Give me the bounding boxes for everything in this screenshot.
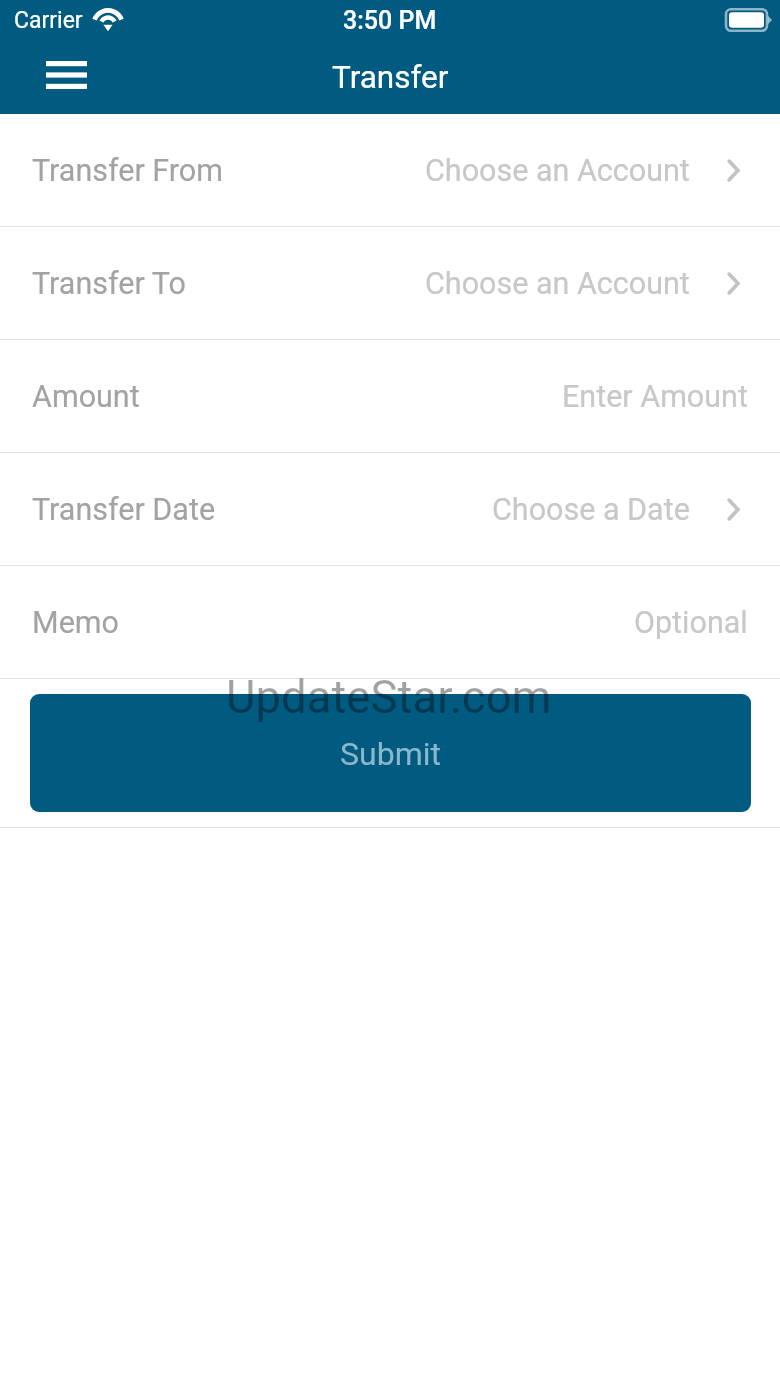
staticText: Submit <box>340 735 441 773</box>
staticText: Transfer To <box>32 266 186 302</box>
staticText: UpdateStar.com <box>226 671 552 724</box>
button[interactable]: Submit <box>30 694 751 812</box>
staticText: Transfer Date <box>32 492 216 528</box>
staticText: Enter Amount <box>562 379 748 415</box>
button[interactable]: Transfer From <box>0 114 780 227</box>
staticText: 3:50 PM <box>343 6 437 35</box>
staticText: Carrier <box>14 7 83 34</box>
button[interactable]: Memo <box>0 566 780 679</box>
staticText: Choose a Date <box>492 492 690 528</box>
staticText: Optional <box>634 605 748 641</box>
staticText: Amount <box>32 379 140 415</box>
button[interactable]: Amount <box>0 340 780 453</box>
staticText: Choose an Account <box>425 153 690 189</box>
button[interactable]: Transfer To <box>0 227 780 340</box>
staticText: Transfer From <box>32 153 223 189</box>
button[interactable]: Transfer Date <box>0 453 780 566</box>
staticText: Transfer <box>332 59 449 96</box>
staticText: Choose an Account <box>425 266 690 302</box>
staticText: Memo <box>32 605 119 641</box>
button[interactable]: Menu <box>36 52 96 102</box>
